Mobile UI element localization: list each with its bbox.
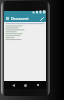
button[interactable]: Edit (38, 15, 45, 22)
staticText: Document (11, 16, 29, 21)
button[interactable]: Home (21, 81, 29, 89)
button[interactable]: Navigation drawer (5, 15, 10, 22)
button[interactable]: Back (9, 81, 17, 89)
button[interactable]: Recent apps (34, 81, 42, 89)
